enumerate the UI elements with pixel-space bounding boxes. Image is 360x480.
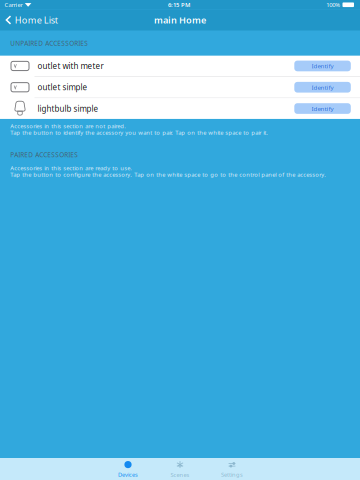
staticText: 100% bbox=[326, 1, 340, 9]
staticText: main Home bbox=[154, 14, 206, 26]
staticText: Tap the button to configure the accessor… bbox=[10, 170, 326, 178]
staticText: Accessories in this section are ready to… bbox=[10, 164, 132, 172]
staticText: Carrier bbox=[5, 1, 23, 9]
button[interactable]: Home List bbox=[0, 11, 58, 29]
button[interactable]: Scenes bbox=[154, 457, 206, 480]
button[interactable]: Settings bbox=[206, 457, 258, 480]
button[interactable]: Devices bbox=[102, 457, 154, 480]
button[interactable]: Identify bbox=[294, 61, 351, 71]
staticText: outlet with meter bbox=[37, 61, 103, 71]
staticText: Identify bbox=[312, 104, 334, 113]
staticText: 6:15 PM bbox=[168, 1, 190, 9]
staticText: Tap the button to identify the accessory… bbox=[10, 129, 268, 136]
staticText: Identify bbox=[312, 83, 334, 91]
staticText: UNPAIRED ACCESSORIES bbox=[10, 39, 88, 47]
button[interactable]: Identify bbox=[294, 82, 351, 93]
staticText: outlet simple bbox=[37, 82, 87, 92]
staticText: lightbulb simple bbox=[37, 103, 98, 114]
staticText: Settings bbox=[221, 471, 243, 478]
staticText: Accessories in this section are not pair… bbox=[10, 122, 126, 130]
staticText: Home List bbox=[15, 14, 58, 26]
button[interactable]: lightbulb simple bbox=[0, 98, 360, 119]
staticText: Scenes bbox=[170, 471, 189, 478]
staticText: Devices bbox=[118, 471, 138, 478]
staticText: Identify bbox=[312, 62, 334, 70]
button[interactable]: outlet with meter bbox=[0, 56, 360, 76]
staticText: PAIRED ACCESSORIES bbox=[10, 150, 78, 159]
button[interactable]: Identify bbox=[294, 103, 351, 114]
button[interactable]: outlet simple bbox=[0, 77, 360, 97]
